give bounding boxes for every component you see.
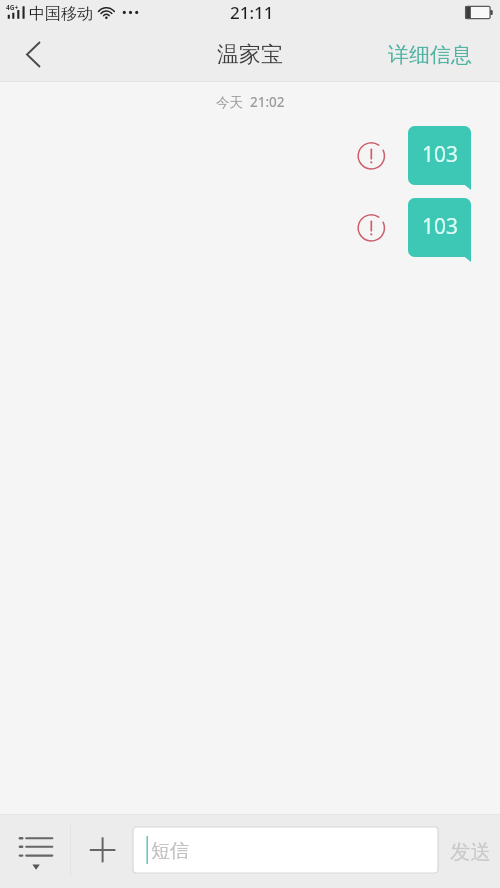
button[interactable]: 短信	[133, 827, 438, 873]
staticText: 103	[422, 140, 459, 169]
staticText: 温家宝	[217, 41, 283, 69]
staticText: 详细信息	[388, 42, 472, 68]
staticText: 21:02	[250, 93, 285, 111]
button[interactable]: 详细信息	[372, 26, 500, 81]
staticText: 发送	[450, 839, 491, 865]
staticText: 4G+	[6, 3, 19, 12]
staticText: 21:11	[230, 1, 274, 24]
button[interactable]: Quick replies	[0, 814, 70, 888]
button[interactable]: 103	[408, 198, 472, 262]
staticText: 今天	[216, 94, 243, 111]
staticText: 中国移动	[29, 4, 93, 24]
staticText: 103	[422, 212, 459, 241]
button[interactable]: 发送	[438, 814, 500, 888]
button[interactable]: Message failed, tap to resend	[353, 211, 389, 247]
button[interactable]: Back	[0, 26, 62, 81]
button[interactable]: 103	[408, 126, 472, 190]
button[interactable]: Message failed, tap to resend	[353, 139, 389, 175]
staticText: 短信	[151, 839, 189, 863]
button[interactable]: Add attachment	[76, 814, 130, 888]
